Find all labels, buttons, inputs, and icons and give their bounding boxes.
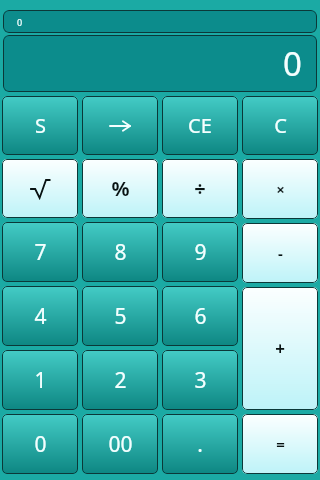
staticText: 1 [34,366,47,395]
button[interactable]: 8 [82,222,158,282]
button[interactable]: 00 [82,414,158,474]
button[interactable]: × [242,159,318,219]
staticText: . [197,430,203,459]
button[interactable]: 5 [82,286,158,346]
button[interactable]: . [162,414,238,474]
button[interactable]: Backspace [82,96,158,155]
button[interactable]: CE [162,96,238,155]
staticText: 0 [17,16,23,28]
staticText: 5 [114,302,127,331]
staticText: 3 [194,366,207,395]
button[interactable]: 4 [2,286,78,346]
button[interactable]: 7 [2,222,78,282]
staticText: 0 [283,41,302,86]
staticText: 00 [108,430,133,459]
staticText: ÷ [194,175,206,202]
button[interactable]: 2 [82,350,158,410]
button[interactable]: = [242,414,318,474]
staticText: % [111,175,130,202]
button[interactable]: 6 [162,286,238,346]
staticText: - [278,243,283,263]
button[interactable]: + [242,287,318,410]
button[interactable]: % [82,159,158,218]
button[interactable]: ÷ [162,159,238,218]
button[interactable]: - [242,223,318,283]
staticText: 9 [194,238,207,267]
button[interactable]: 1 [2,350,78,410]
staticText: + [275,337,285,360]
staticText: 2 [114,366,127,395]
staticText: 4 [34,302,47,331]
staticText: CE [188,112,212,139]
staticText: S [35,112,46,139]
button[interactable]: 0 [3,10,317,33]
staticText: 8 [114,238,127,267]
button[interactable]: 0 [3,35,317,92]
staticText: × [276,179,285,199]
staticText: 7 [34,238,47,267]
button[interactable]: C [242,96,318,155]
button[interactable]: 9 [162,222,238,282]
button[interactable]: S [2,96,78,155]
button[interactable]: Square root [2,159,78,218]
button[interactable]: 0 [2,414,78,474]
button[interactable]: 3 [162,350,238,410]
staticText: 6 [194,302,207,331]
staticText: = [276,434,285,454]
staticText: C [274,112,287,139]
staticText: 0 [34,430,47,459]
